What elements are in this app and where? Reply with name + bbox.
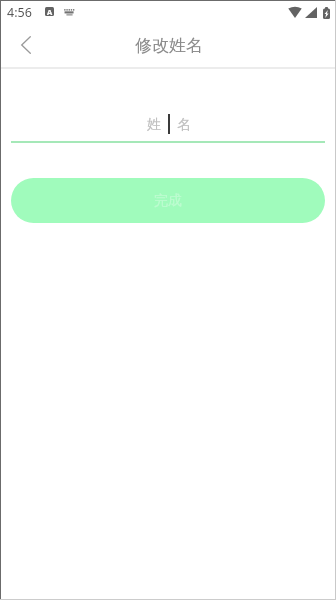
staticText: 4:56 [7, 4, 32, 21]
button[interactable]: Back [0, 23, 48, 69]
staticText: 完成 [154, 192, 182, 210]
button[interactable]: Name input [11, 111, 325, 143]
staticText: 姓 [147, 116, 161, 134]
staticText: 修改姓名 [135, 35, 203, 56]
staticText: A [47, 7, 53, 16]
staticText: 名 [177, 116, 191, 134]
button[interactable]: 完成 [11, 178, 325, 223]
